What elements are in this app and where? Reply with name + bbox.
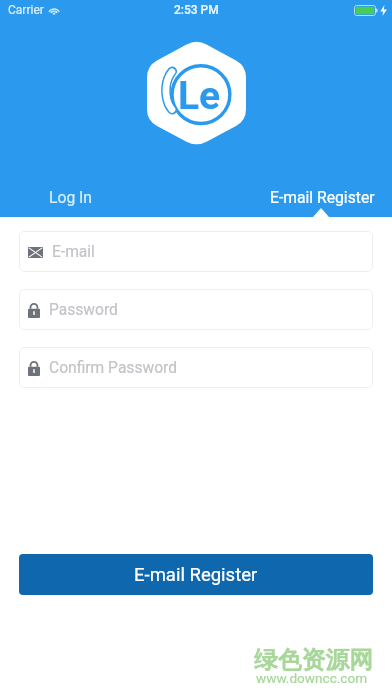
staticText: Confirm Password xyxy=(49,359,178,377)
staticText: www.downcc.com xyxy=(256,670,368,686)
staticText: Password xyxy=(49,301,118,319)
button[interactable]: Confirm Password xyxy=(19,347,373,388)
button[interactable]: E-mail Register xyxy=(252,177,392,217)
staticText: Log In xyxy=(49,188,93,206)
button[interactable]: Password xyxy=(19,289,373,330)
button[interactable]: Log In xyxy=(0,177,142,217)
staticText: E-mail Register xyxy=(134,564,258,586)
staticText: 绿色资源网 xyxy=(254,645,373,675)
button[interactable]: E-mail Register xyxy=(19,554,373,595)
staticText: Carrier xyxy=(8,3,44,17)
button[interactable]: E-mail xyxy=(19,231,373,272)
staticText: E-mail Register xyxy=(270,188,375,206)
staticText: 2:53 PM xyxy=(174,3,219,17)
staticText: Le xyxy=(178,73,221,119)
staticText: E-mail xyxy=(52,243,95,261)
